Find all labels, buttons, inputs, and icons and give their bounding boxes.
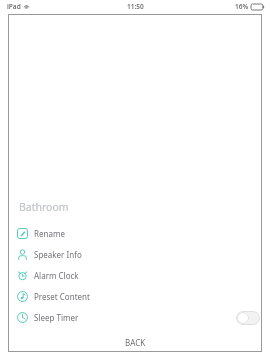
staticText: 16% bbox=[235, 2, 249, 11]
button[interactable]: Alarm Clock bbox=[8, 265, 262, 286]
button[interactable]: Preset Content bbox=[8, 286, 262, 307]
staticText: Alarm Clock bbox=[34, 270, 79, 281]
other: Rename bbox=[17, 228, 28, 239]
button[interactable]: Speaker Info bbox=[8, 244, 262, 265]
other: Speaker Info bbox=[17, 249, 28, 260]
button[interactable]: BACK bbox=[8, 334, 262, 350]
staticText: Speaker Info bbox=[34, 249, 82, 260]
staticText: Rename bbox=[34, 228, 65, 239]
staticText: Bathroom bbox=[19, 200, 69, 214]
button[interactable]: Sleep Timer bbox=[8, 307, 236, 328]
button[interactable]: Sleep timer toggle bbox=[236, 311, 260, 325]
other: Sleep Timer bbox=[17, 312, 28, 323]
staticText: iPad bbox=[7, 2, 21, 11]
other: Preset Content bbox=[17, 291, 28, 302]
other: Alarm Clock bbox=[17, 270, 28, 281]
staticText: Sleep Timer bbox=[34, 312, 79, 323]
staticText: Preset Content bbox=[34, 291, 90, 302]
button[interactable]: Rename bbox=[8, 223, 262, 244]
staticText: 11:50 bbox=[127, 2, 144, 11]
staticText: BACK bbox=[125, 337, 146, 348]
